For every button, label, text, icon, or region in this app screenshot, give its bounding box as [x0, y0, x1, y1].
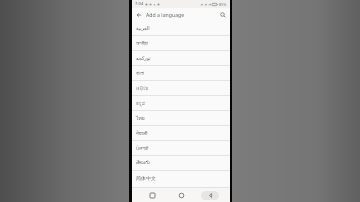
- staticText: ਪੰਜਾਬੀ: [136, 146, 149, 151]
- staticText: Add a language: [146, 11, 185, 18]
- button[interactable]: Back: [133, 9, 144, 20]
- button[interactable]: 简体中文: [132, 171, 230, 185]
- button[interactable]: تورکجه: [132, 51, 230, 65]
- staticText: नेपाली: [136, 130, 148, 137]
- button[interactable]: ಕನ್ನಡ: [132, 96, 230, 110]
- button[interactable]: ਪੰਜਾਬੀ: [132, 141, 230, 155]
- staticText: ಕನ್ನಡ: [136, 101, 145, 106]
- staticText: العربية: [136, 25, 150, 31]
- button[interactable]: العربية: [132, 21, 230, 35]
- staticText: 简体中文: [136, 175, 156, 181]
- staticText: অসমীয়া: [136, 41, 148, 46]
- staticText: ไทย: [136, 114, 145, 122]
- button[interactable]: Back: [201, 191, 219, 200]
- button[interactable]: ଓଡ଼ିଆ: [132, 81, 230, 95]
- button[interactable]: Search: [217, 9, 228, 20]
- staticText: తెలుగు: [136, 160, 150, 167]
- button[interactable]: Home: [172, 190, 190, 201]
- button[interactable]: ไทย: [132, 111, 230, 125]
- staticText: 85%: [219, 2, 227, 7]
- staticText: 7:04: [135, 1, 144, 7]
- button[interactable]: বাংলা: [132, 66, 230, 80]
- staticText: ଓଡ଼ିଆ: [136, 86, 148, 91]
- button[interactable]: Recent apps: [143, 190, 161, 201]
- staticText: বাংলা: [136, 71, 144, 76]
- button[interactable]: తెలుగు: [132, 156, 230, 170]
- button[interactable]: नेपाली: [132, 126, 230, 140]
- staticText: تورکجه: [136, 55, 151, 61]
- button[interactable]: অসমীয়া: [132, 36, 230, 50]
